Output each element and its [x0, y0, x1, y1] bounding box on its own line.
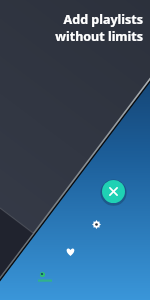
button[interactable]: Add playlists: [24, 11, 143, 45]
staticText: Add playlists: [24, 11, 143, 28]
button[interactable]: Favorite: [64, 245, 78, 259]
staticText: without limits: [24, 28, 143, 45]
button[interactable]: Settings: [90, 218, 104, 232]
button[interactable]: Close: [102, 180, 125, 203]
